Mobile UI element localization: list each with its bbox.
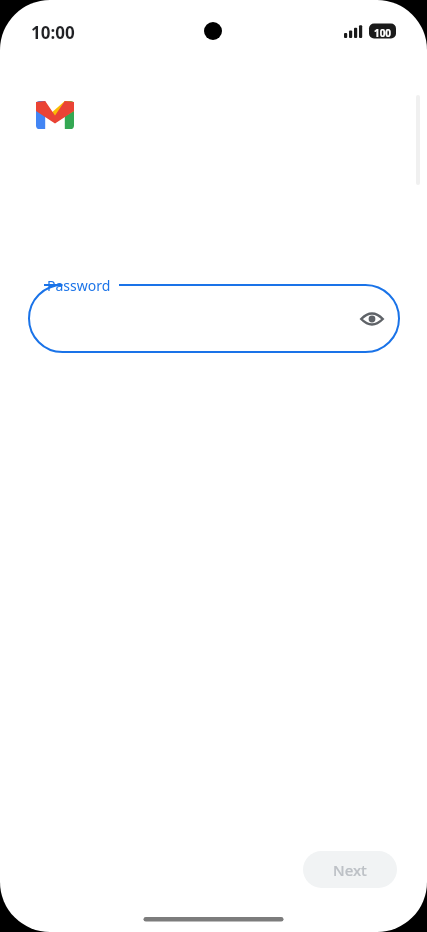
staticText: Password	[47, 276, 111, 295]
button[interactable]	[29, 285, 399, 352]
staticText: 10:00	[31, 21, 75, 44]
button[interactable]: Show password	[352, 299, 392, 339]
button[interactable]: Next	[303, 851, 397, 888]
staticText: 100	[369, 26, 396, 40]
staticText: Next	[333, 860, 367, 880]
